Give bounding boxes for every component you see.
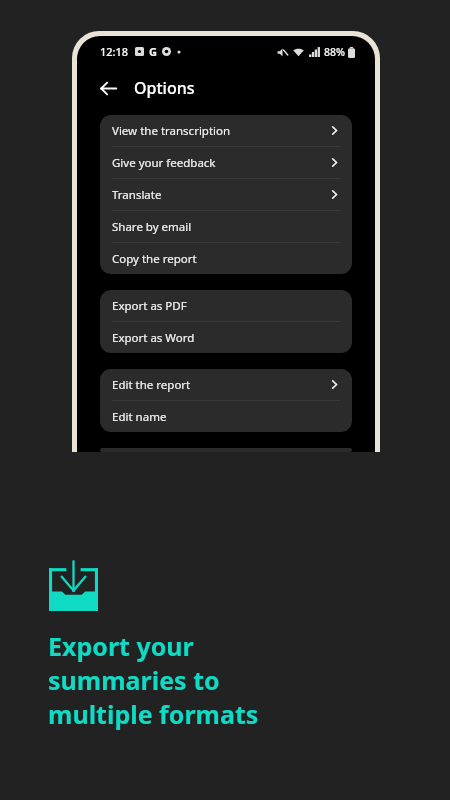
staticText: Edit the report [112, 377, 191, 393]
staticText: Export your summaries to multiple format… [48, 629, 259, 731]
staticText: Give your feedback [112, 155, 216, 171]
staticText: Copy the report [112, 251, 197, 267]
staticText: View the transcription [112, 123, 231, 139]
staticText: Export as PDF [112, 298, 187, 314]
staticText: Options [134, 77, 195, 99]
button[interactable]: Export as Word [100, 322, 352, 353]
staticText: G [149, 44, 157, 59]
staticText: Share by email [112, 219, 192, 235]
button[interactable]: Give your feedback [100, 147, 352, 178]
button[interactable]: Export as PDF [100, 290, 352, 321]
button[interactable]: View the transcription [100, 115, 352, 146]
staticText: 12:18 [100, 44, 129, 59]
staticText: Translate [112, 187, 162, 203]
button[interactable]: Translate [100, 179, 352, 210]
button[interactable]: Edit name [100, 401, 352, 432]
button[interactable]: Copy the report [100, 243, 352, 274]
button[interactable]: Back [91, 71, 125, 105]
staticText: Edit name [112, 409, 167, 425]
staticText: 88% [324, 45, 345, 59]
button[interactable]: Share by email [100, 211, 352, 242]
staticText: Export as Word [112, 330, 195, 346]
button[interactable]: Edit the report [100, 369, 352, 400]
